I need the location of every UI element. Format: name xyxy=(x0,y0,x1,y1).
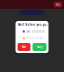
staticText: Wait! Before you go... xyxy=(17,23,48,26)
staticText: Save progress xyxy=(26,30,44,33)
staticText: Skip xyxy=(55,3,60,6)
staticText: Exit xyxy=(22,45,26,49)
staticText: Keep streak xyxy=(26,36,42,40)
button[interactable]: Stay xyxy=(32,43,46,51)
button[interactable]: Exit xyxy=(17,43,30,51)
staticText: Stay xyxy=(37,45,42,49)
button[interactable]: Skip xyxy=(54,2,62,7)
